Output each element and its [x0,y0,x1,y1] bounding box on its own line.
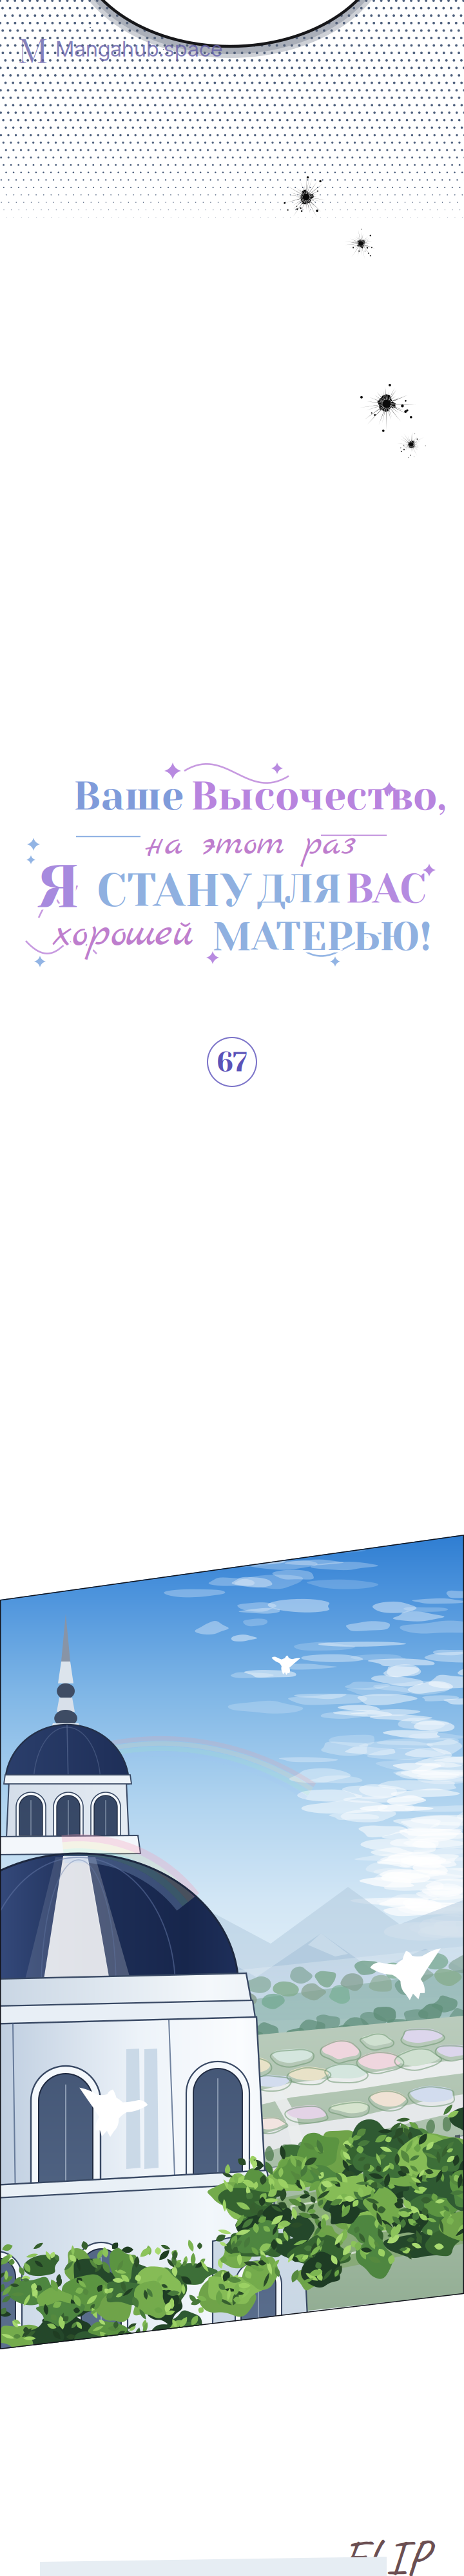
staticText: Я [38,850,81,919]
staticText: ВАС [344,867,426,915]
staticText: МАТЕРЬЮ! [213,911,432,957]
staticText: на этот раз [145,819,356,866]
staticText: Ваше [74,771,185,817]
staticText: хорошей [54,905,197,961]
staticText: 67 [217,1046,247,1078]
staticText: СТАНУ [98,862,253,915]
staticText: МАТЕРЬЮ! [214,916,434,961]
staticText: Я [35,852,77,921]
staticText: хорошей [53,904,197,960]
staticText: ВАС [344,867,425,914]
staticText: ВАС [347,863,428,911]
staticText: СТАНУ [94,864,249,917]
staticText: ВАС [347,867,428,914]
staticText: хорошей [52,904,195,960]
staticText: на этот раз [143,821,354,868]
staticText: МАТЕРЬЮ! [214,916,433,962]
staticText: ДЛЯ [258,864,342,909]
staticText: хорошей [53,908,197,963]
staticText: СТАНУ [99,863,254,916]
staticText: Высочество, [189,775,445,821]
staticText: Я [35,851,78,920]
staticText: ДЛЯ [260,866,344,912]
staticText: ВАС [343,865,424,912]
staticText: Я [36,850,79,919]
staticText: Высочество, [188,773,444,819]
staticText: Высочество, [191,773,447,819]
staticText: СТАНУ [97,861,251,915]
staticText: хорошей [54,907,197,963]
staticText: на этот раз [144,823,355,870]
staticText: ВАС [346,863,428,910]
staticText: M [18,26,48,72]
staticText: Ваше [72,772,182,817]
staticText: ДЛЯ [259,864,343,909]
staticText: МАТЕРЬЮ! [215,913,434,958]
staticText: хорошей [52,906,195,962]
staticText: Высочество, [190,771,446,817]
staticText: МАТЕРЬЮ! [215,914,434,959]
staticText: ВАС [343,866,424,913]
staticText: ДЛЯ [256,868,340,914]
staticText: на этот раз [146,819,357,866]
staticText: МАТЕРЬЮ! [213,914,432,959]
staticText: Я [40,851,82,920]
staticText: Высочество, [192,771,448,817]
staticText: Я [40,852,82,921]
staticText: Высочество, [190,776,446,821]
staticText: Я [36,854,79,924]
staticText: хорошей [52,908,196,964]
staticText: Ваше [75,772,185,817]
staticText: Я [40,853,82,922]
staticText: МАТЕРЬЮ! [210,914,429,959]
staticText: Ваше [73,773,184,819]
staticText: Ваше [74,776,185,821]
staticText: Высочество, [192,776,448,821]
staticText: хорошей [49,905,193,961]
staticText: Ваше [73,776,184,822]
staticText: на этот раз [144,820,354,867]
staticText: ВАС [348,865,429,912]
staticText: на этот раз [148,822,358,869]
staticText: на этот раз [146,823,356,871]
staticText: СТАНУ [94,863,249,916]
staticText: ДЛЯ [260,865,344,911]
staticText: Ваше [71,774,181,820]
staticText: Высочество, [193,772,448,817]
staticText: ДЛЯ [257,864,341,909]
staticText: ВАС [344,863,426,910]
staticText: ДЛЯ [255,865,339,911]
staticText: ВАС [343,864,424,912]
staticText: Я [39,850,82,920]
staticText: МАТЕРЬЮ! [214,911,433,957]
staticText: хорошей [50,908,194,963]
staticText: Я [39,854,82,923]
staticText: Ваше [72,771,183,817]
staticText: хорошей [52,908,195,964]
staticText: МАТЕРЬЮ! [211,912,430,958]
staticText: Ваше [72,775,182,821]
staticText: ВАС [345,865,427,912]
staticText: Ваше [72,776,183,821]
staticText: на этот раз [144,819,355,867]
staticText: Ваше [75,775,185,821]
staticText: СТАНУ [96,866,250,920]
staticText: МАТЕРЬЮ! [212,911,431,957]
staticText: ДЛЯ [260,864,343,910]
staticText: СТАНУ [99,865,254,918]
staticText: Высочество, [188,774,444,820]
staticText: Высочество, [191,771,447,816]
staticText: СТАНУ [98,866,252,920]
staticText: ВАС [348,866,429,913]
staticText: СТАНУ [95,862,250,915]
staticText: хорошей [49,906,193,962]
staticText: СТАНУ [96,861,250,915]
staticText: хорошей [51,908,194,964]
staticText: на этот раз [146,819,356,866]
staticText: ДЛЯ [258,869,342,914]
staticText: на этот раз [144,822,354,869]
staticText: Высочество, [193,775,448,821]
staticText: СТАНУ [97,866,251,920]
staticText: Высочество, [189,772,445,817]
staticText: ДЛЯ [257,869,341,914]
